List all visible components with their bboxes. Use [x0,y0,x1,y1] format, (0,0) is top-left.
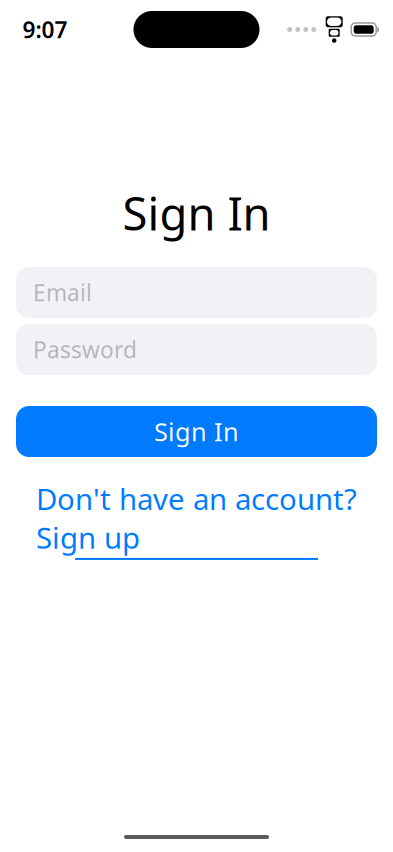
staticText: 9:07 [22,14,67,44]
button[interactable]: Email [16,267,377,318]
button[interactable]: Don't have an account? Sign up [30,475,363,564]
staticText: Password [33,334,137,365]
staticText: Sign In [154,415,239,448]
button[interactable]: Password [16,324,377,375]
staticText: Don't have an account? Sign up [36,479,357,557]
staticText: Sign In [122,183,270,243]
staticText: Email [33,277,92,308]
button[interactable]: Sign In [16,406,377,457]
